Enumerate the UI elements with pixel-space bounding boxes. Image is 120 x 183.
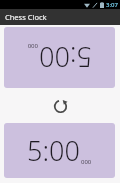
staticText: 5:00 <box>39 39 92 76</box>
staticText: 000 <box>27 42 38 50</box>
button[interactable]: 5:00 <box>4 27 115 88</box>
staticText: 3:07 <box>106 1 118 9</box>
staticText: Chess Clock <box>5 12 47 22</box>
button[interactable]: 5:00 <box>4 123 115 178</box>
staticText: 5:00 <box>27 132 80 169</box>
button[interactable]: Reset <box>49 95 71 117</box>
staticText: 000 <box>81 158 92 166</box>
